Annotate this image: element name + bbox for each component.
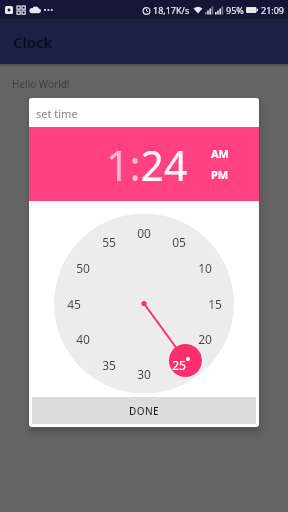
- staticText: 30: [137, 366, 151, 382]
- staticText: 1:24: [106, 137, 188, 193]
- staticText: 18,17K/s: [153, 4, 190, 16]
- staticText: set time: [36, 106, 78, 121]
- staticText: 10: [198, 260, 212, 276]
- button[interactable]: AM: [211, 146, 229, 161]
- staticText: 21:09: [261, 4, 285, 16]
- staticText: 15: [208, 296, 222, 312]
- staticText: Clock: [13, 32, 53, 52]
- staticText: 35: [102, 357, 116, 373]
- staticText: 55: [102, 234, 116, 250]
- staticText: 25: [172, 357, 186, 373]
- staticText: 05: [172, 234, 186, 250]
- staticText: 00: [137, 225, 151, 241]
- staticText: Hello World!: [12, 77, 70, 91]
- staticText: 95%: [226, 4, 244, 16]
- button[interactable]: PM: [211, 167, 229, 182]
- staticText: 40: [76, 331, 90, 347]
- staticText: 50: [76, 260, 90, 276]
- button[interactable]: DONE: [32, 397, 256, 424]
- staticText: 45: [67, 296, 81, 312]
- staticText: DONE: [129, 404, 160, 418]
- staticText: 20: [198, 331, 212, 347]
